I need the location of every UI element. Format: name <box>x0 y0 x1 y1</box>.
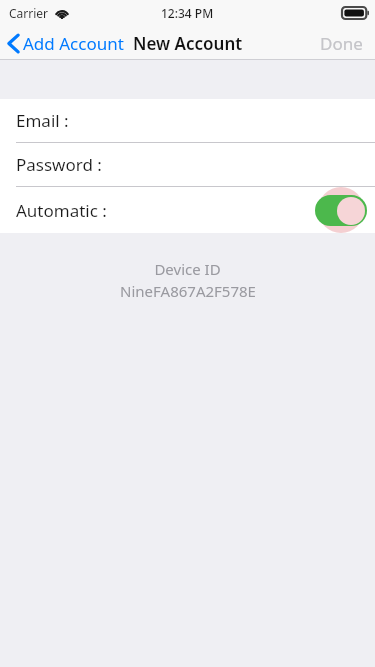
staticText: NineFA867A2F578E <box>120 281 256 301</box>
staticText: Automatic : <box>16 199 107 222</box>
staticText: Carrier <box>9 5 49 21</box>
button[interactable]: Add Account <box>0 30 132 57</box>
staticText: Add Account <box>23 32 124 55</box>
staticText: 12:34 PM <box>161 5 214 21</box>
staticText: Device ID <box>154 259 221 279</box>
button[interactable]: Email : <box>0 99 375 143</box>
button[interactable]: Done <box>308 28 375 59</box>
staticText: Password : <box>16 153 102 176</box>
button[interactable]: Automatic toggle <box>306 187 375 233</box>
button[interactable]: Password : <box>0 143 375 187</box>
staticText: Email : <box>16 109 69 132</box>
staticText: Done <box>320 32 363 55</box>
staticText: New Account <box>133 32 243 55</box>
